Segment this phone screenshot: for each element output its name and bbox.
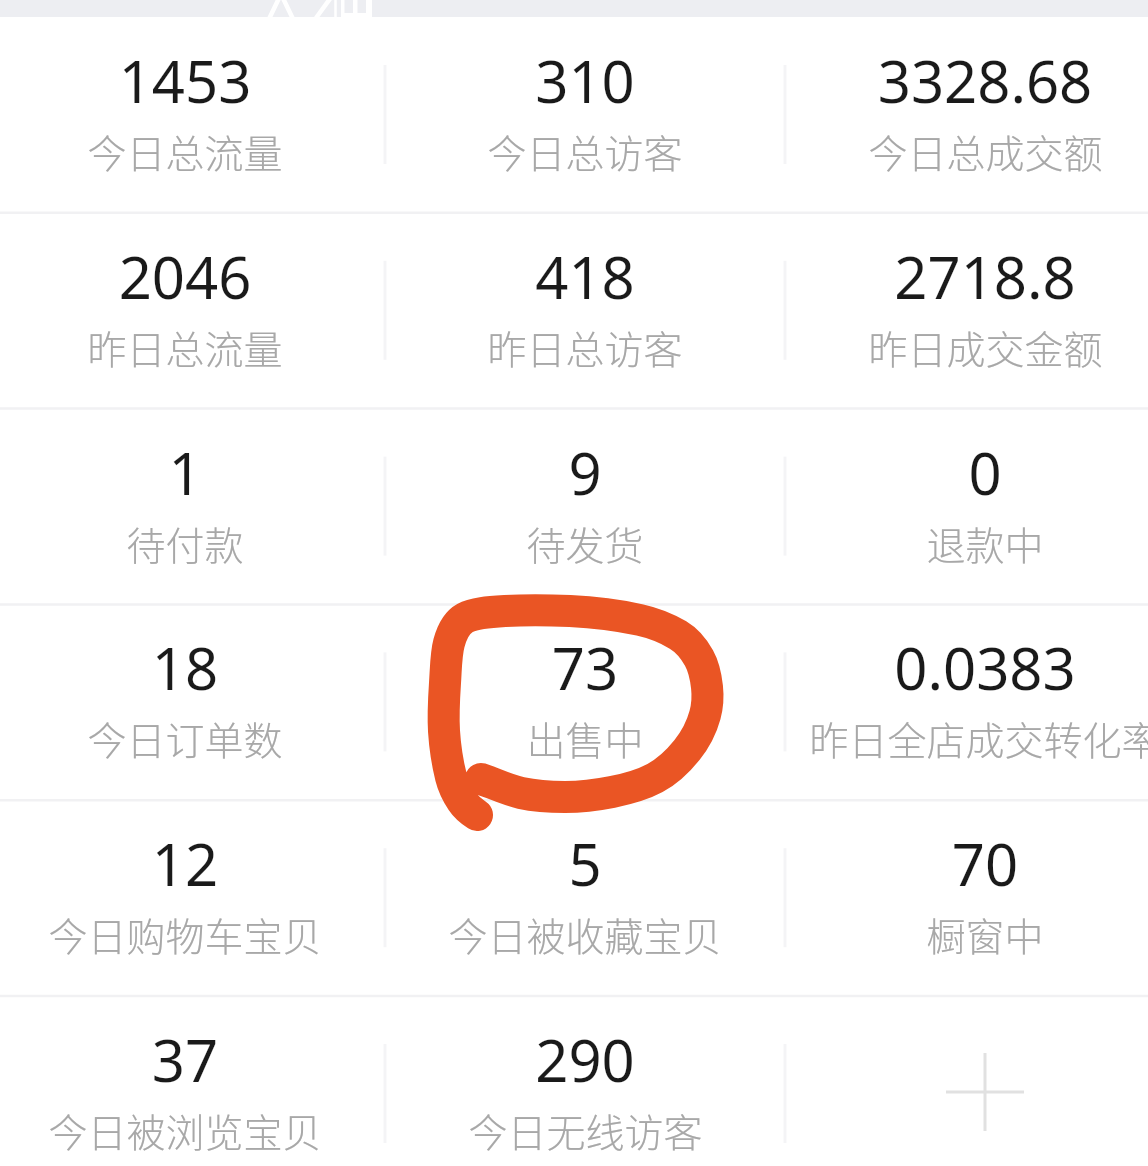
staticText: 出售中 [526, 710, 644, 766]
button[interactable]: 9 [385, 409, 785, 605]
staticText: 今日无线访客 [468, 1102, 703, 1158]
staticText: 3328.68 [785, 41, 1148, 120]
button[interactable]: 310 [385, 17, 785, 213]
staticText: 退款中 [926, 515, 1044, 571]
staticText: 9 [385, 433, 785, 512]
button[interactable]: 290 [385, 996, 785, 1166]
staticText: 今日购物车宝贝 [48, 906, 322, 962]
button[interactable]: 418 [385, 213, 785, 409]
button[interactable]: 2718.8 [785, 213, 1148, 409]
staticText: 0.0383 [785, 628, 1148, 707]
button[interactable]: 0 [785, 409, 1148, 605]
staticText: 今日总访客 [487, 123, 683, 179]
button[interactable]: 1 [0, 409, 385, 605]
staticText: 418 [385, 237, 785, 316]
button[interactable]: 18 [0, 604, 385, 800]
staticText: 290 [385, 1020, 785, 1099]
button[interactable]: 73 [385, 604, 785, 800]
staticText: 昨日全店成交转化率 [809, 710, 1148, 766]
staticText: 0 [785, 433, 1148, 512]
button[interactable]: 37 [0, 996, 385, 1166]
staticText: 今日总流量 [87, 123, 283, 179]
staticText: 5 [385, 824, 785, 903]
staticText: 73 [385, 628, 785, 707]
staticText: 18 [0, 628, 385, 707]
button[interactable]: Add metric [946, 1053, 1024, 1131]
staticText: 待付款 [126, 515, 244, 571]
staticText: 70 [785, 824, 1148, 903]
staticText: 昨日成交金额 [868, 319, 1103, 375]
other: Store header [0, 0, 1148, 17]
button[interactable]: 0.0383 [785, 604, 1148, 800]
staticText: 12 [0, 824, 385, 903]
staticText: 今日订单数 [87, 710, 283, 766]
button[interactable]: 70 [785, 800, 1148, 996]
staticText: 昨日总流量 [87, 319, 283, 375]
button[interactable]: 5 [385, 800, 785, 996]
button[interactable]: 1453 [0, 17, 385, 213]
staticText: 1 [0, 433, 385, 512]
staticText: 2718.8 [785, 237, 1148, 316]
staticText: 今日被浏览宝贝 [48, 1102, 322, 1158]
staticText: 待发货 [526, 515, 644, 571]
staticText: 昨日总访客 [487, 319, 683, 375]
staticText: 37 [0, 1020, 385, 1099]
staticText: 2046 [0, 237, 385, 316]
staticText: 今日总成交额 [868, 123, 1103, 179]
staticText: 橱窗中 [926, 906, 1044, 962]
staticText: 1453 [0, 41, 385, 120]
button[interactable]: 3328.68 [785, 17, 1148, 213]
staticText: 310 [385, 41, 785, 120]
button[interactable]: 12 [0, 800, 385, 996]
staticText: 今日被收藏宝贝 [448, 906, 722, 962]
button[interactable]: 2046 [0, 213, 385, 409]
